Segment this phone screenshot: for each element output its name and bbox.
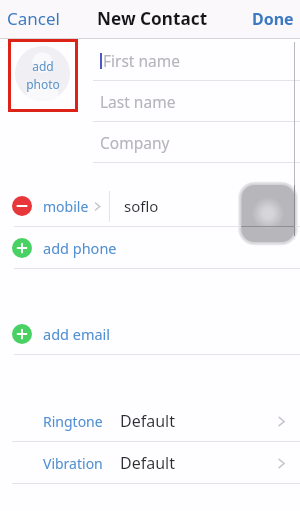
button[interactable]: Ringtone: [0, 400, 300, 442]
staticText: Cancel: [7, 7, 60, 30]
staticText: Ringtone: [43, 412, 103, 431]
button[interactable]: Last name: [93, 81, 300, 122]
staticText: Done: [252, 8, 294, 30]
staticText: soflo: [124, 196, 159, 216]
button[interactable]: add email: [0, 313, 300, 355]
button[interactable]: First name: [93, 40, 300, 81]
staticText: Company: [100, 132, 170, 153]
button[interactable]: Vibration: [0, 442, 300, 484]
staticText: add: [32, 58, 54, 74]
staticText: mobile: [43, 197, 89, 216]
staticText: add phone: [43, 238, 117, 258]
staticText: New Contact: [97, 7, 208, 30]
staticText: First name: [103, 50, 181, 71]
button[interactable]: Company: [93, 122, 300, 163]
staticText: Last name: [100, 91, 176, 112]
staticText: add email: [43, 324, 111, 344]
staticText: Vibration: [43, 454, 103, 473]
button[interactable]: add phone: [0, 227, 300, 269]
staticText: Default: [120, 410, 175, 432]
button[interactable]: Cancel: [3, 1, 64, 36]
staticText: photo: [26, 76, 60, 92]
button[interactable]: mobile: [0, 185, 109, 227]
button[interactable]: Add photo: [15, 46, 70, 101]
staticText: Default: [120, 452, 175, 474]
button[interactable]: Done: [248, 2, 298, 36]
